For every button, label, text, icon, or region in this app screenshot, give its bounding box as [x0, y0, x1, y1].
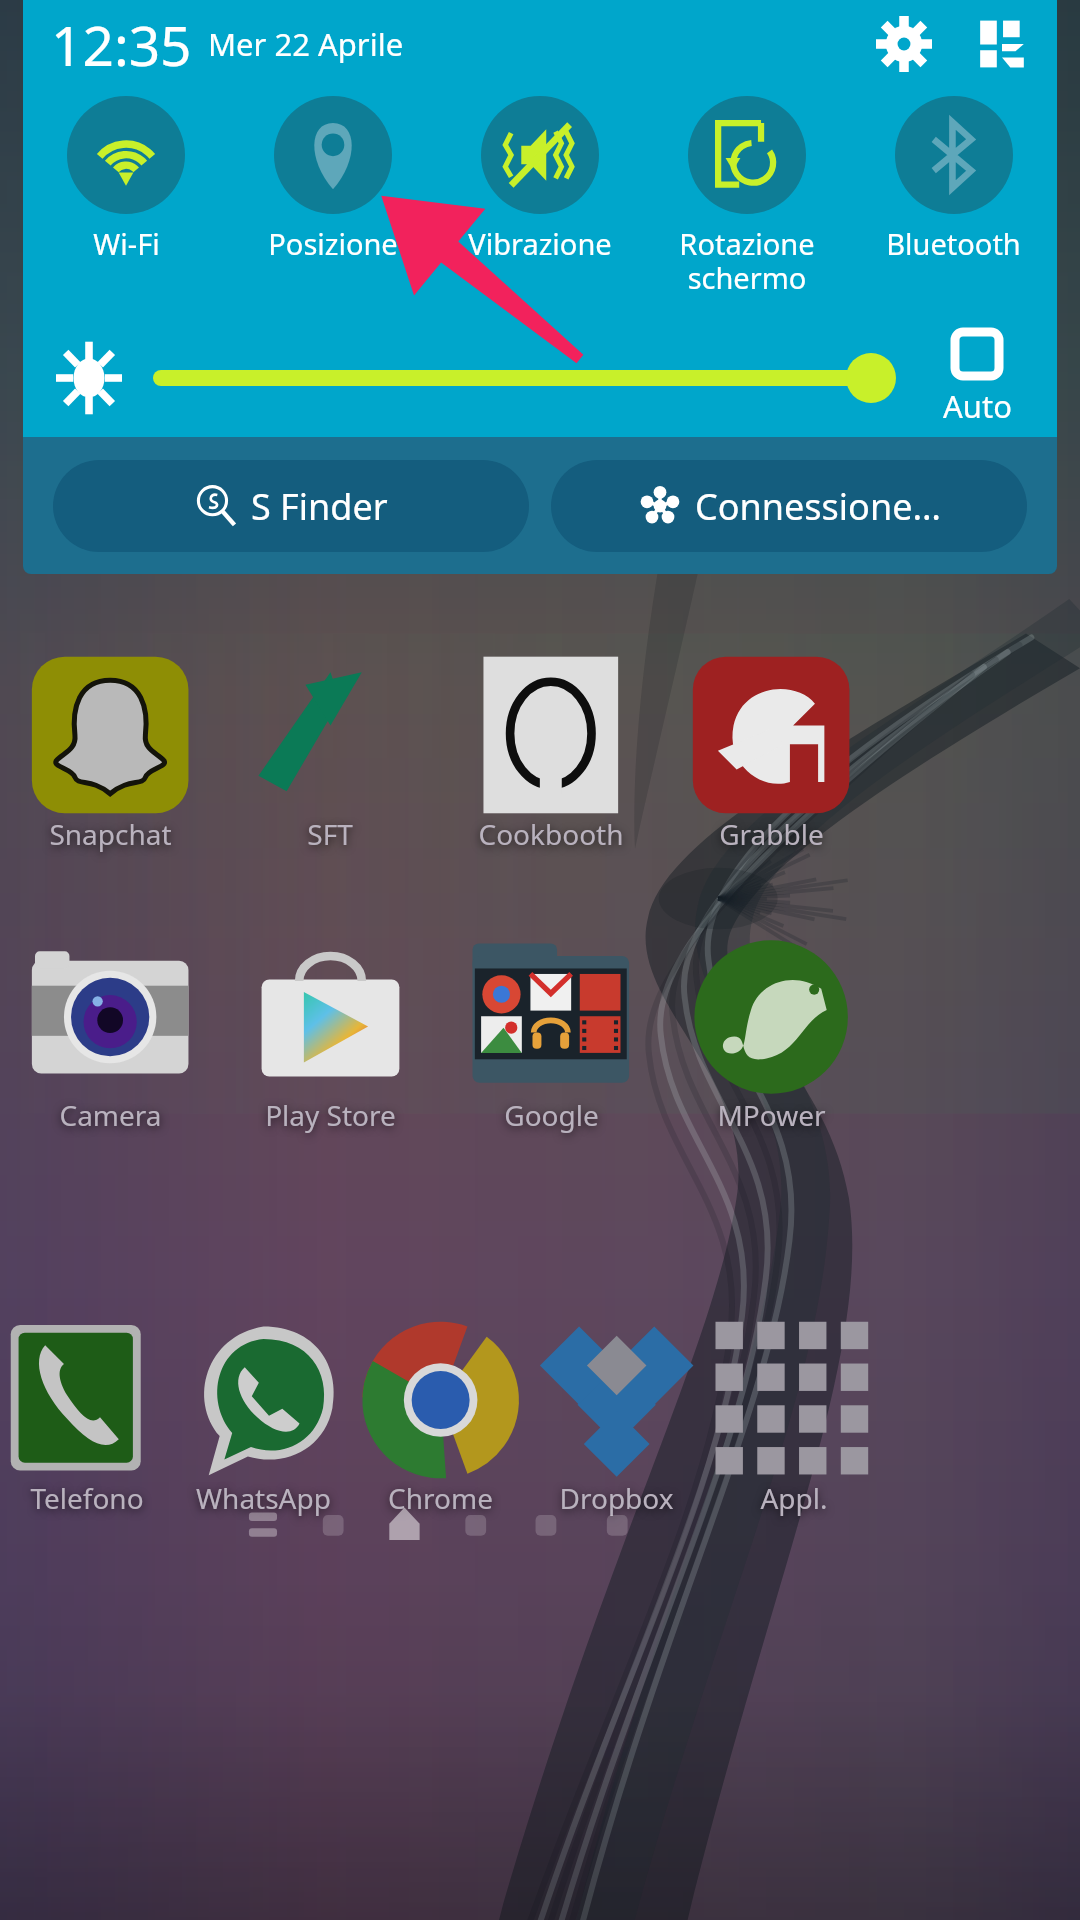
button[interactable]: Google: [427, 1096, 675, 1173]
staticText: MPower: [717, 1096, 826, 1134]
staticText: Bluetooth: [886, 224, 1021, 263]
button[interactable]: Settings: [873, 13, 935, 75]
staticText: Google: [504, 1096, 599, 1134]
button[interactable]: Cookbooth: [427, 815, 675, 892]
button[interactable]: Dropbox: [492, 1479, 740, 1556]
button[interactable]: Posizione: [229, 88, 436, 318]
button[interactable]: Rotazione schermo: [643, 88, 850, 318]
staticText: Dropbox: [559, 1479, 674, 1517]
button[interactable]: Bluetooth: [850, 88, 1057, 318]
staticText: Mer 22 Aprile: [208, 23, 404, 65]
button[interactable]: S Finder: [53, 460, 529, 552]
button[interactable]: Telefono: [0, 1479, 211, 1556]
button[interactable]: Play Store: [206, 1096, 454, 1173]
button[interactable]: WhatsApp: [139, 1479, 387, 1556]
staticText: S Finder: [251, 482, 388, 531]
staticText: Telefono: [30, 1479, 144, 1517]
staticText: Grabble: [719, 815, 824, 853]
button[interactable]: Grabble: [647, 815, 895, 892]
button[interactable]: Wi-Fi: [23, 88, 229, 318]
button[interactable]: Vibrazione: [436, 88, 643, 318]
button[interactable]: [153, 350, 897, 406]
staticText: WhatsApp: [196, 1479, 331, 1517]
button[interactable]: Brightness: [53, 342, 125, 414]
button[interactable]: MPower: [647, 1096, 895, 1173]
staticText: Snapchat: [49, 815, 172, 853]
staticText: Auto: [943, 385, 1012, 427]
staticText: Wi-Fi: [93, 224, 160, 263]
button[interactable]: Snapchat: [0, 815, 234, 892]
staticText: Chrome: [388, 1479, 493, 1517]
staticText: Connessione…: [695, 482, 941, 531]
staticText: Cookbooth: [478, 815, 624, 853]
button[interactable]: Connessione…: [551, 460, 1027, 552]
button[interactable]: SFT: [206, 815, 454, 892]
button[interactable]: Chrome: [316, 1479, 564, 1556]
button[interactable]: Edit quick settings: [971, 13, 1033, 75]
staticText: Rotazione schermo: [679, 224, 815, 297]
staticText: Vibrazione: [468, 224, 612, 263]
button[interactable]: Appl.: [670, 1479, 918, 1556]
staticText: Play Store: [265, 1096, 396, 1134]
staticText: Camera: [59, 1096, 162, 1134]
staticText: SFT: [307, 815, 353, 853]
staticText: Appl.: [760, 1479, 828, 1517]
button[interactable]: Auto: [919, 328, 1035, 427]
button[interactable]: Camera: [0, 1096, 234, 1173]
staticText: Posizione: [268, 224, 398, 263]
staticText: 12:35: [51, 7, 192, 82]
